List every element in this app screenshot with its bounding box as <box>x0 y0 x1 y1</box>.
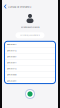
staticText: Llamar a 061 <box>6 55 16 58</box>
button[interactable]: Back <box>3 3 8 10</box>
button[interactable]: Llamar a 088 <box>4 71 55 77</box>
button[interactable]: Call <box>25 89 35 99</box>
staticText: Servicios de emergencia <box>20 26 39 28</box>
staticText: Llamar a 911 <box>6 61 16 64</box>
button[interactable]: No contesta, vuelve a intentarlo <box>15 32 44 38</box>
button[interactable]: Llamar a 112 <box>4 47 55 53</box>
staticText: Llamada de emergencia <box>8 5 31 8</box>
staticText: Llamar a 112 <box>6 67 16 70</box>
button[interactable]: Llamar a 911 <box>4 59 55 65</box>
staticText: No contesta, vuelve a intentarlo <box>20 34 40 36</box>
staticText: Llamar a 112 <box>6 49 16 52</box>
button[interactable]: Llamar a 091 <box>4 77 55 83</box>
button[interactable]: Llamar a 061 <box>4 53 55 59</box>
staticText: Llamar a 088 <box>6 73 16 76</box>
button[interactable]: Llamar a 112 <box>4 65 55 71</box>
button[interactable]: Llamar a 911 <box>4 41 55 47</box>
staticText: Llamar a 911 <box>6 43 16 45</box>
staticText: Llamar a 091 <box>6 79 16 82</box>
